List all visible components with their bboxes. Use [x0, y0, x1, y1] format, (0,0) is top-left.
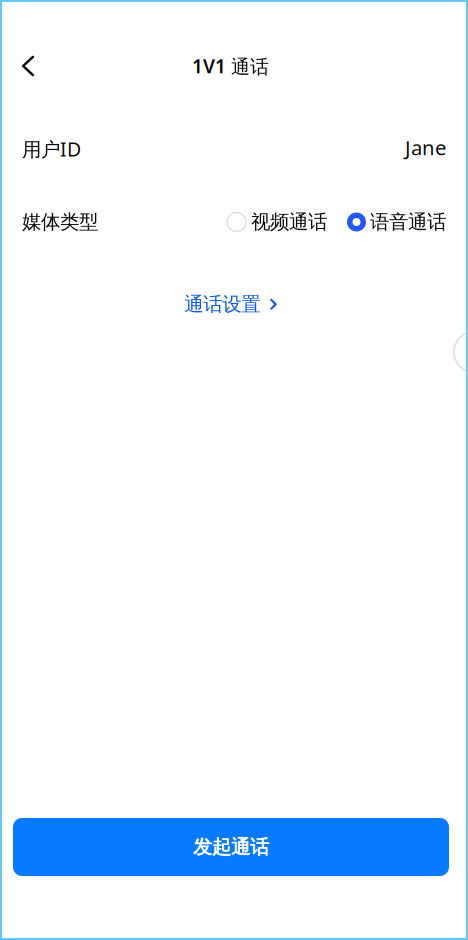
staticText: 1V1 通话: [192, 53, 269, 79]
staticText: 通话设置: [184, 292, 260, 316]
button[interactable]: Floating assistant: [446, 330, 468, 374]
button[interactable]: 视频通话: [227, 210, 327, 234]
button[interactable]: Back: [6, 44, 50, 88]
button[interactable]: 语音通话: [327, 210, 446, 234]
staticText: Jane: [405, 134, 446, 161]
button[interactable]: 发起通话: [13, 818, 449, 876]
button[interactable]: 通话设置: [184, 284, 284, 324]
staticText: 媒体类型: [22, 210, 98, 234]
staticText: 用户ID: [22, 136, 81, 162]
staticText: 语音通话: [370, 210, 446, 234]
staticText: 发起通话: [193, 835, 269, 859]
staticText: 视频通话: [251, 210, 327, 234]
